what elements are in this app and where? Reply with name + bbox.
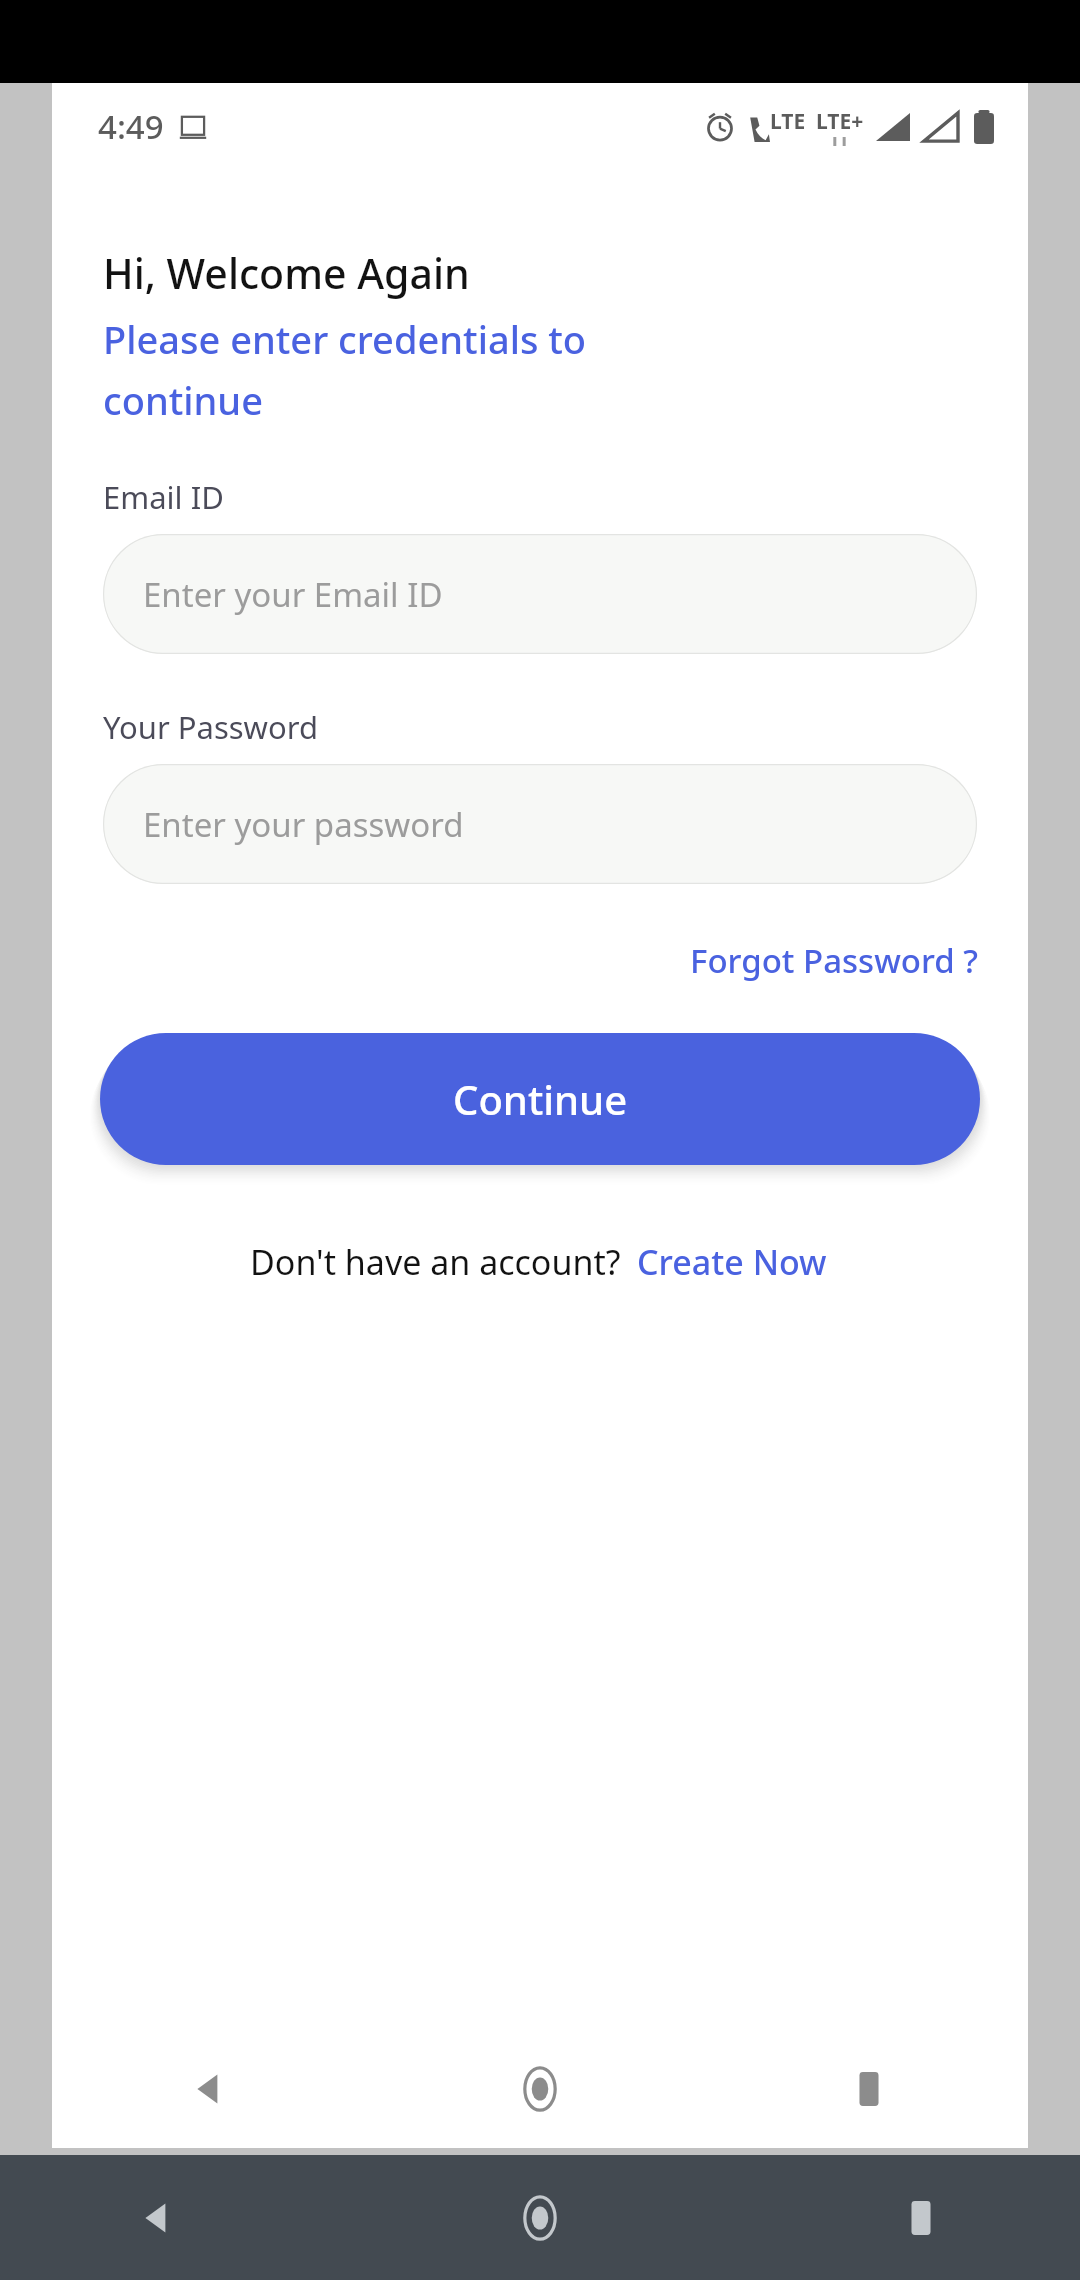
button[interactable]: Recent apps bbox=[830, 2050, 908, 2128]
button[interactable]: Back bbox=[120, 2179, 198, 2257]
staticText: Forgot Password ? bbox=[690, 938, 979, 983]
button[interactable]: Continue bbox=[100, 1033, 980, 1165]
button[interactable]: Enter your password bbox=[103, 764, 977, 884]
staticText: LTE bbox=[770, 107, 806, 136]
staticText: Enter your Email ID bbox=[143, 572, 443, 617]
staticText: LTE+ bbox=[816, 107, 864, 136]
button[interactable]: Home bbox=[501, 2179, 579, 2257]
staticText: Your Password bbox=[103, 706, 318, 748]
staticText: Create Now bbox=[637, 1239, 827, 1285]
button[interactable]: Recent apps bbox=[882, 2179, 960, 2257]
button[interactable]: Enter your Email ID bbox=[103, 534, 977, 654]
staticText: Don't have an account? bbox=[250, 1239, 621, 1285]
button[interactable]: Back bbox=[172, 2050, 250, 2128]
button[interactable]: Home bbox=[501, 2050, 579, 2128]
staticText: Continue bbox=[453, 1072, 628, 1126]
staticText: Hi, Welcome Again bbox=[103, 245, 470, 301]
staticText: 4:49 bbox=[98, 104, 164, 149]
button[interactable]: Create Now bbox=[633, 1233, 831, 1291]
staticText: Enter your password bbox=[143, 802, 464, 847]
staticText: Please enter credentials to continue bbox=[103, 313, 587, 426]
button[interactable]: Forgot Password ? bbox=[684, 930, 985, 991]
staticText: Email ID bbox=[103, 476, 224, 518]
